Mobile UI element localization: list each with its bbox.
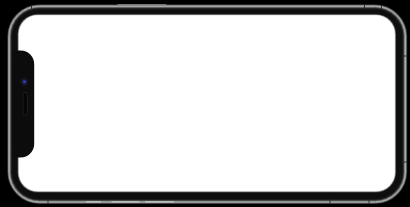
button[interactable]: Phone mock-up, blank screen xyxy=(0,0,410,207)
